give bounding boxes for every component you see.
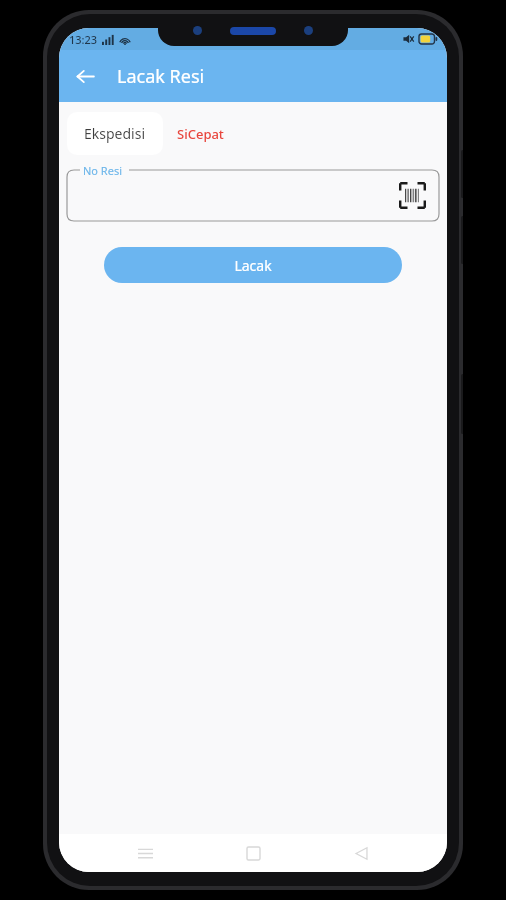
staticText: Ekspedisi <box>84 124 146 143</box>
button[interactable]: Scan barcode <box>397 180 427 210</box>
button[interactable]: Back <box>339 834 383 872</box>
staticText: SiCepat <box>177 125 224 143</box>
button[interactable]: Ekspedisi <box>67 112 163 155</box>
button[interactable]: SiCepat <box>163 113 238 155</box>
button[interactable]: Home <box>231 834 275 872</box>
button[interactable]: Recents <box>123 834 167 872</box>
button[interactable]: Lacak <box>104 247 402 283</box>
staticText: No Resi <box>83 163 123 178</box>
staticText: Lacak <box>234 256 272 275</box>
button[interactable]: Back <box>65 56 105 96</box>
staticText: 13:23 <box>69 32 98 47</box>
staticText: Lacak Resi <box>117 64 205 89</box>
